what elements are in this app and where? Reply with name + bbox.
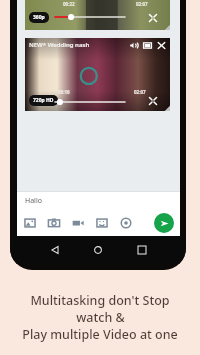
button[interactable]: Fullscreen <box>147 95 158 106</box>
button[interactable]: Gallery <box>23 216 37 230</box>
button[interactable]: NEW* Wedding nash <box>25 38 170 111</box>
staticText: 00:22 <box>63 1 75 7</box>
staticText: 720p HD <box>33 97 54 104</box>
staticText: 02:07 <box>136 1 148 7</box>
button[interactable]: Home <box>89 241 107 259</box>
button[interactable]: Mute <box>128 40 139 51</box>
button[interactable]: Close <box>156 40 167 51</box>
staticText: NEW* Wedding nash <box>29 41 128 49</box>
staticText: Hallo <box>25 196 42 206</box>
button[interactable]: Picture in picture <box>142 40 153 51</box>
button[interactable]: Fullscreen <box>147 12 158 23</box>
staticText: Multitasking don't Stop <box>30 292 170 309</box>
staticText: 00:16 <box>58 89 70 95</box>
button[interactable]: 360p <box>33 14 45 21</box>
button[interactable]: Stickers <box>95 216 109 230</box>
button[interactable]: Camera <box>47 216 61 230</box>
button[interactable]: Recent apps <box>133 241 151 259</box>
button[interactable]: 00:22 <box>25 0 170 30</box>
staticText: watch & <box>76 309 125 326</box>
staticText: 360p <box>33 14 45 21</box>
button[interactable]: Back <box>46 241 64 259</box>
button[interactable]: Video <box>71 216 85 230</box>
button[interactable]: 720p HD <box>33 97 54 104</box>
button[interactable]: Hallo <box>25 192 180 209</box>
staticText: 02:07 <box>134 89 146 95</box>
staticText: Play multiple Video at one <box>22 326 178 343</box>
button[interactable]: Send <box>154 213 174 233</box>
button[interactable]: Lens <box>119 216 133 230</box>
